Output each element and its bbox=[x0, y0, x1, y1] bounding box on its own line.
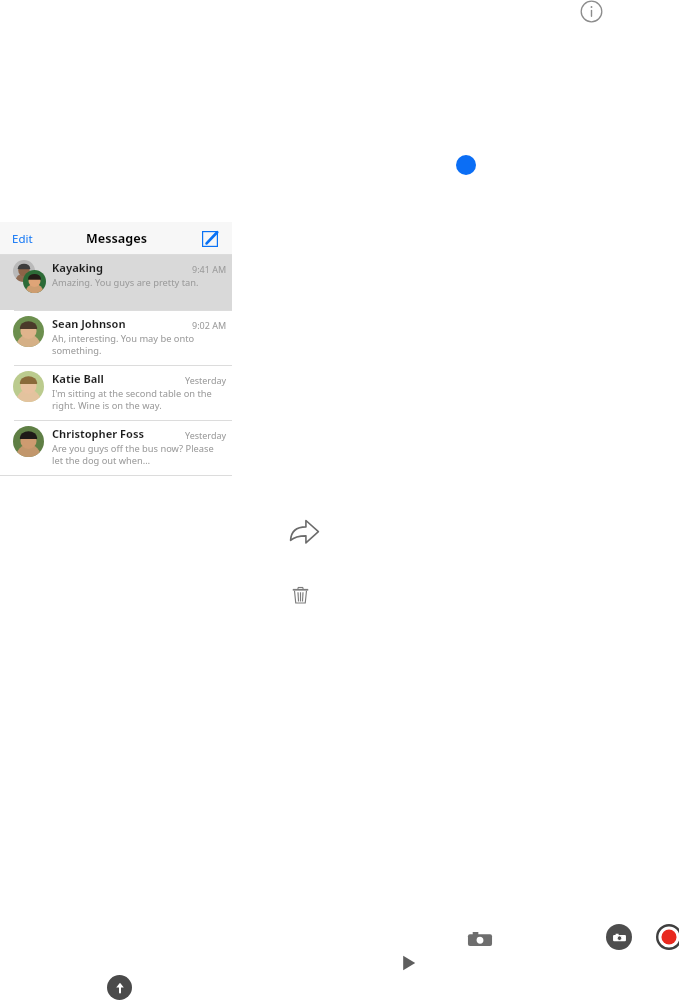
button[interactable]: Edit bbox=[6, 227, 39, 251]
staticText: Yesterday bbox=[185, 374, 227, 386]
button[interactable]: Status dot bbox=[456, 155, 476, 175]
staticText: Christopher Foss bbox=[52, 426, 144, 441]
staticText: Sean Johnson bbox=[52, 316, 126, 331]
staticText: Edit bbox=[12, 231, 33, 247]
button[interactable]: Play bbox=[396, 951, 420, 975]
button[interactable]: Share bbox=[288, 516, 320, 548]
staticText: 9:02 AM bbox=[192, 319, 227, 331]
button[interactable]: Delete bbox=[288, 583, 313, 608]
staticText: Kayaking bbox=[52, 260, 103, 275]
staticText: Are you guys off the bus now? Please let… bbox=[52, 442, 227, 467]
button[interactable]: Kayaking bbox=[0, 255, 232, 310]
button[interactable]: Info bbox=[580, 0, 603, 23]
button[interactable]: Compose bbox=[200, 229, 220, 249]
button[interactable]: Christopher Foss bbox=[0, 420, 232, 475]
button[interactable]: Camera bbox=[466, 925, 494, 953]
staticText: Messages bbox=[86, 230, 147, 247]
button[interactable]: Scroll to top bbox=[107, 975, 132, 1000]
staticText: Ah, interesting. You may be onto somethi… bbox=[52, 332, 227, 357]
staticText: Amazing. You guys are pretty tan. bbox=[52, 276, 199, 289]
button[interactable]: Sean Johnson bbox=[0, 310, 232, 365]
staticText: 9:41 AM bbox=[192, 263, 227, 275]
button[interactable]: Katie Ball bbox=[0, 365, 232, 420]
button[interactable]: Take photo bbox=[606, 924, 632, 950]
button[interactable]: Record bbox=[656, 924, 679, 950]
staticText: Katie Ball bbox=[52, 371, 104, 386]
staticText: Yesterday bbox=[185, 429, 227, 441]
staticText: I'm sitting at the second table on the r… bbox=[52, 387, 227, 412]
